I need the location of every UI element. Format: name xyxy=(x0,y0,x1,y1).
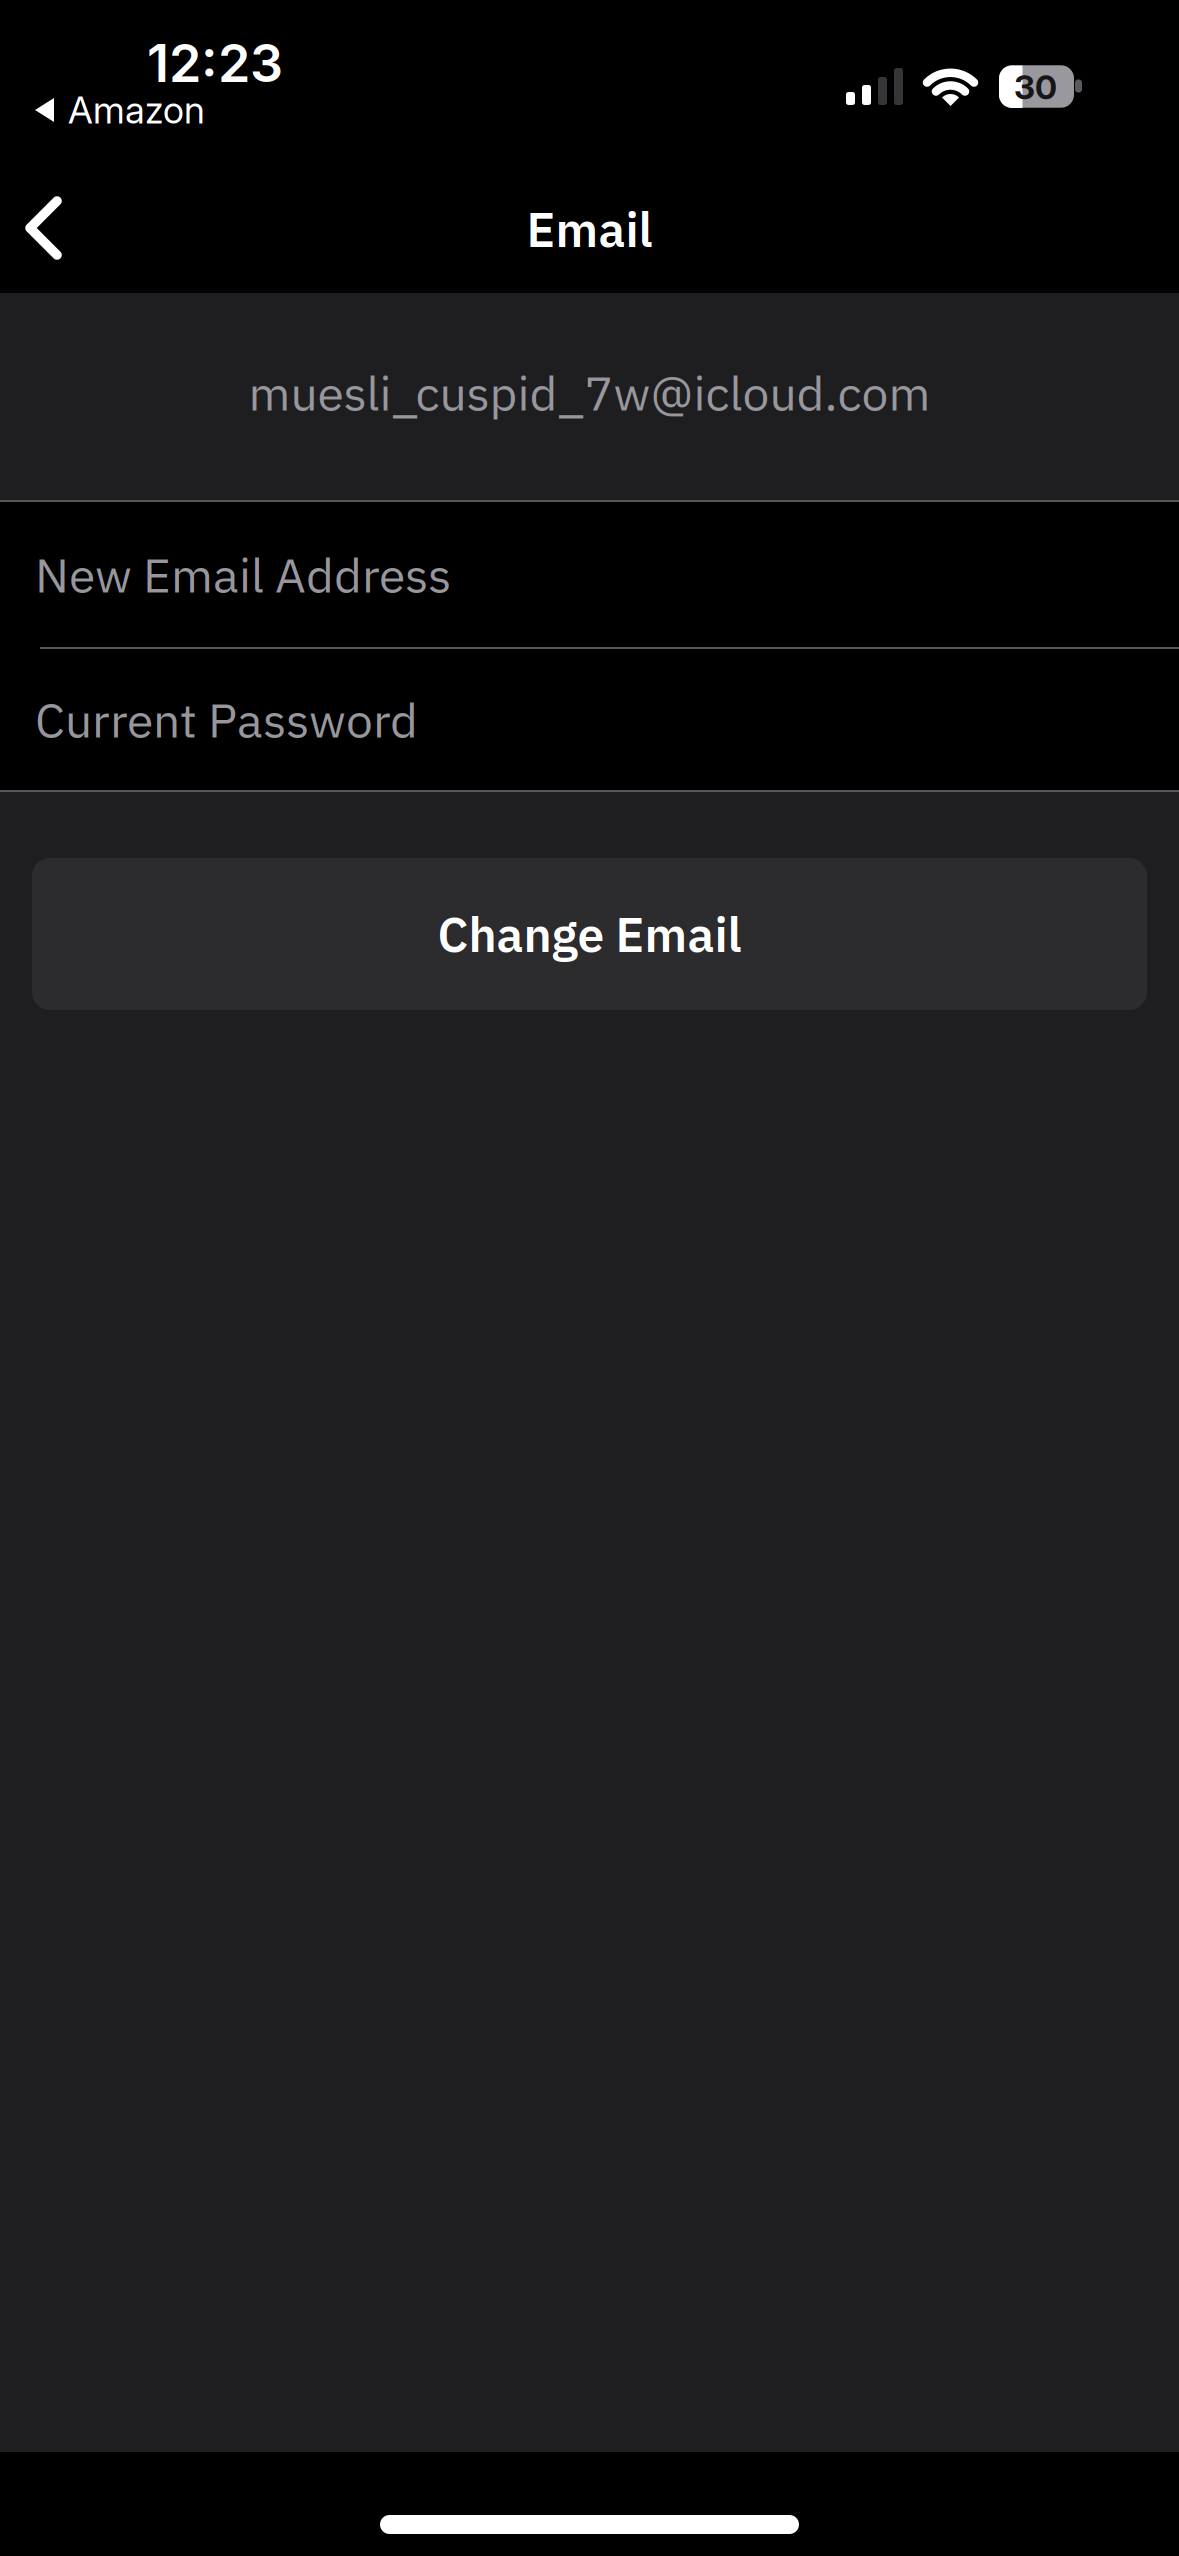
staticText: 30 xyxy=(1014,67,1057,107)
staticText: 12:23 xyxy=(147,31,283,94)
button[interactable]: Back xyxy=(0,174,90,282)
button[interactable]: New Email Address xyxy=(0,502,1179,647)
staticText: Change Email xyxy=(437,903,741,965)
staticText: New Email Address xyxy=(35,543,451,606)
staticText: Email xyxy=(526,198,652,260)
staticText: Current Password xyxy=(35,688,418,751)
button[interactable]: Current Password xyxy=(0,649,1179,790)
staticText: Amazon xyxy=(68,87,205,133)
button[interactable]: Change Email xyxy=(32,858,1147,1010)
staticText: muesli_cuspid_7w@icloud.com xyxy=(248,361,930,424)
button[interactable]: Back to Amazon xyxy=(35,87,205,133)
